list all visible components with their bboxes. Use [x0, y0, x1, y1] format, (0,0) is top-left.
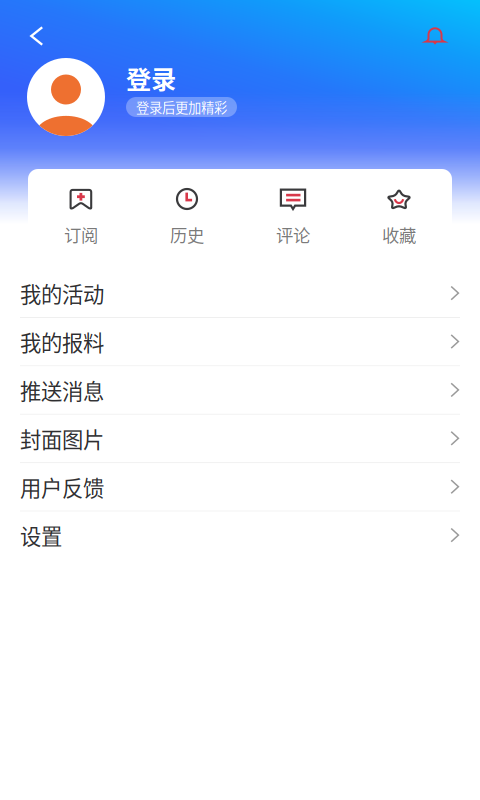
staticText: 登录后更加精彩	[136, 97, 227, 117]
staticText: 收藏	[382, 222, 416, 247]
staticText: 评论	[276, 222, 310, 247]
staticText: 登录	[126, 60, 176, 96]
button[interactable]: 用户反馈	[0, 463, 480, 512]
button[interactable]: Notifications	[407, 14, 480, 58]
button[interactable]: 历史	[134, 169, 240, 255]
staticText: 历史	[170, 222, 204, 247]
staticText: 用户反馈	[20, 471, 104, 502]
staticText: 封面图片	[20, 423, 104, 454]
button[interactable]: 订阅	[28, 169, 134, 255]
staticText: 设置	[20, 520, 62, 551]
button[interactable]: 评论	[240, 169, 346, 255]
button[interactable]: 封面图片	[0, 415, 480, 463]
button[interactable]: 我的报料	[0, 318, 480, 366]
button[interactable]: 推送消息	[0, 366, 480, 415]
button[interactable]: 我的活动	[0, 270, 480, 318]
staticText: 我的活动	[20, 278, 104, 309]
button[interactable]: 收藏	[346, 169, 452, 255]
staticText: 订阅	[64, 222, 98, 247]
button[interactable]: 登录后更加精彩	[126, 97, 237, 117]
button[interactable]: Back	[0, 14, 61, 58]
staticText: 我的报料	[20, 326, 104, 357]
button[interactable]: 设置	[0, 512, 480, 560]
staticText: 推送消息	[20, 375, 104, 406]
